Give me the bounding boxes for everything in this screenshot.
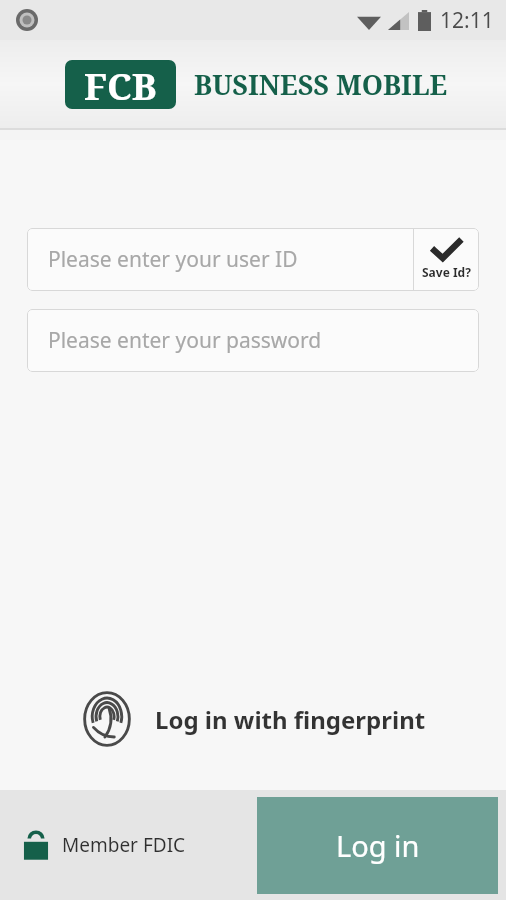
staticText: Log in with fingerprint: [155, 703, 426, 736]
staticText: Please enter your password: [48, 326, 322, 355]
staticText: FCB: [84, 60, 157, 109]
staticText: Please enter your user ID: [48, 245, 298, 274]
staticText: BUSINESS MOBILE: [194, 66, 448, 103]
button[interactable]: Member FDIC: [22, 829, 186, 861]
button[interactable]: Log in: [257, 797, 498, 894]
staticText: Log in: [336, 826, 420, 865]
button[interactable]: Save Id: [414, 228, 479, 291]
staticText: Save Id?: [422, 264, 471, 280]
button[interactable]: Please enter your password: [27, 309, 479, 372]
staticText: 12:11: [440, 6, 494, 35]
button[interactable]: Log in with fingerprint: [73, 685, 434, 753]
button[interactable]: Please enter your user ID: [27, 228, 479, 291]
staticText: Member FDIC: [62, 832, 186, 858]
